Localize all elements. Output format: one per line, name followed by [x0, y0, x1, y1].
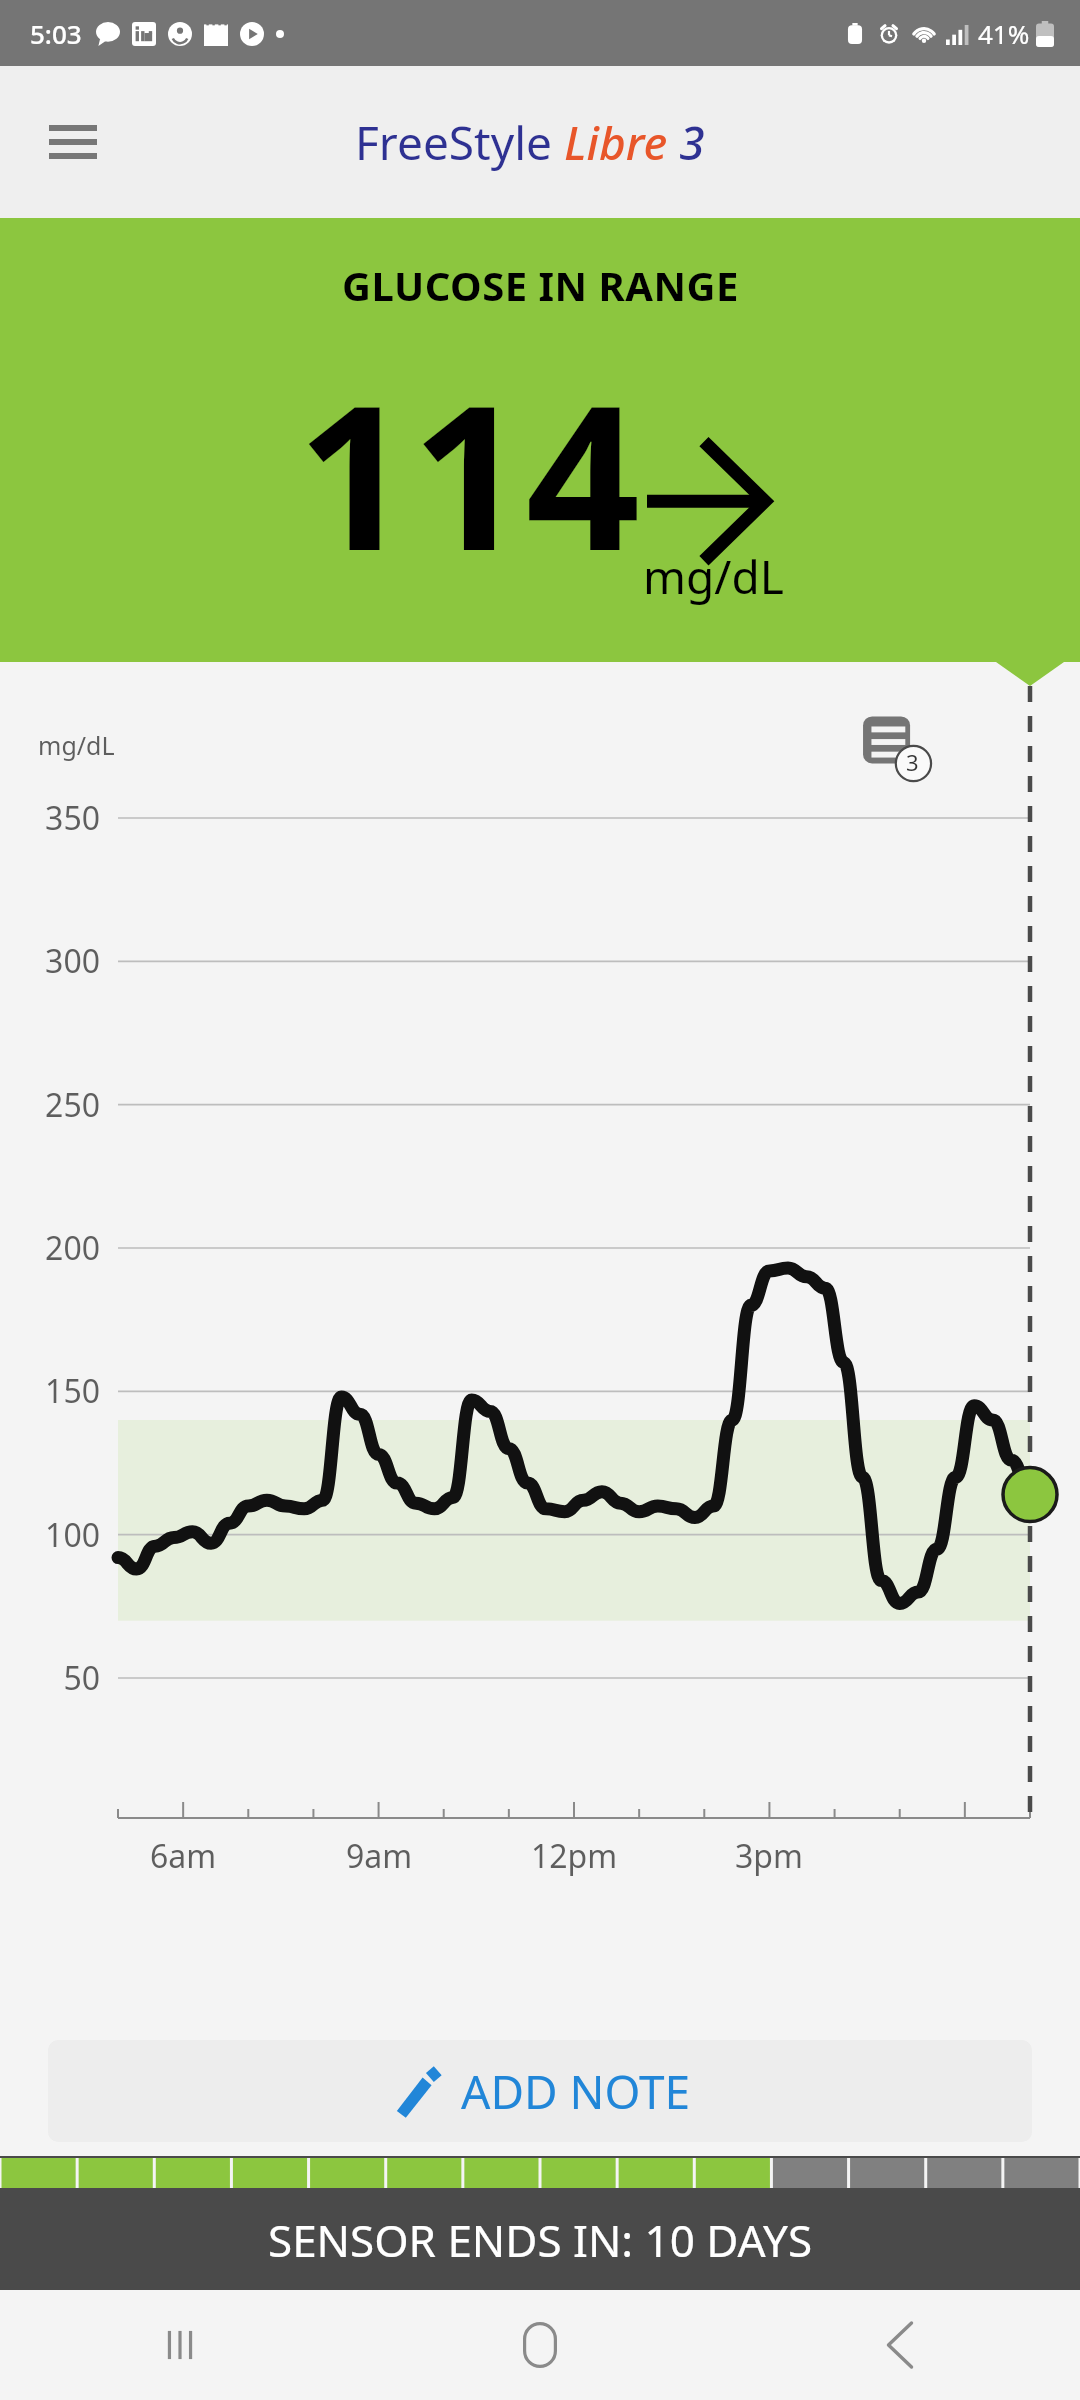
button[interactable]: Home: [360, 2290, 720, 2400]
staticText: GLUCOSE IN RANGE: [342, 258, 739, 312]
staticText: 100: [8, 1513, 100, 1557]
button[interactable]: Open navigation menu: [42, 111, 104, 173]
staticText: mg/dL: [643, 545, 784, 608]
button[interactable]: Notes, 3 entries: [858, 708, 942, 792]
staticText: 250: [8, 1083, 100, 1127]
staticText: 12pm: [504, 1834, 644, 1878]
staticText: 9am: [309, 1834, 449, 1878]
staticText: 200: [8, 1226, 100, 1270]
staticText: ADD NOTE: [461, 2060, 691, 2123]
staticText: FreeStyle Libre 3: [355, 111, 705, 174]
button[interactable]: Recent apps: [0, 2290, 360, 2400]
staticText: 50: [8, 1656, 100, 1700]
staticText: 300: [8, 939, 100, 983]
staticText: 5:03: [30, 16, 82, 51]
staticText: 6am: [113, 1834, 253, 1878]
button[interactable]: Back: [720, 2290, 1080, 2400]
staticText: SENSOR ENDS IN: 10 DAYS: [268, 2210, 813, 2270]
staticText: 350: [8, 796, 100, 840]
staticText: 150: [8, 1369, 100, 1413]
staticText: mg/dL: [38, 728, 115, 762]
button[interactable]: ADD NOTE: [48, 2040, 1032, 2142]
staticText: 3: [906, 747, 919, 777]
staticText: 3pm: [699, 1834, 839, 1878]
staticText: 114: [297, 336, 641, 608]
staticText: 41%: [978, 16, 1030, 51]
button[interactable]: SENSOR ENDS IN: 10 DAYS: [0, 2190, 1080, 2290]
